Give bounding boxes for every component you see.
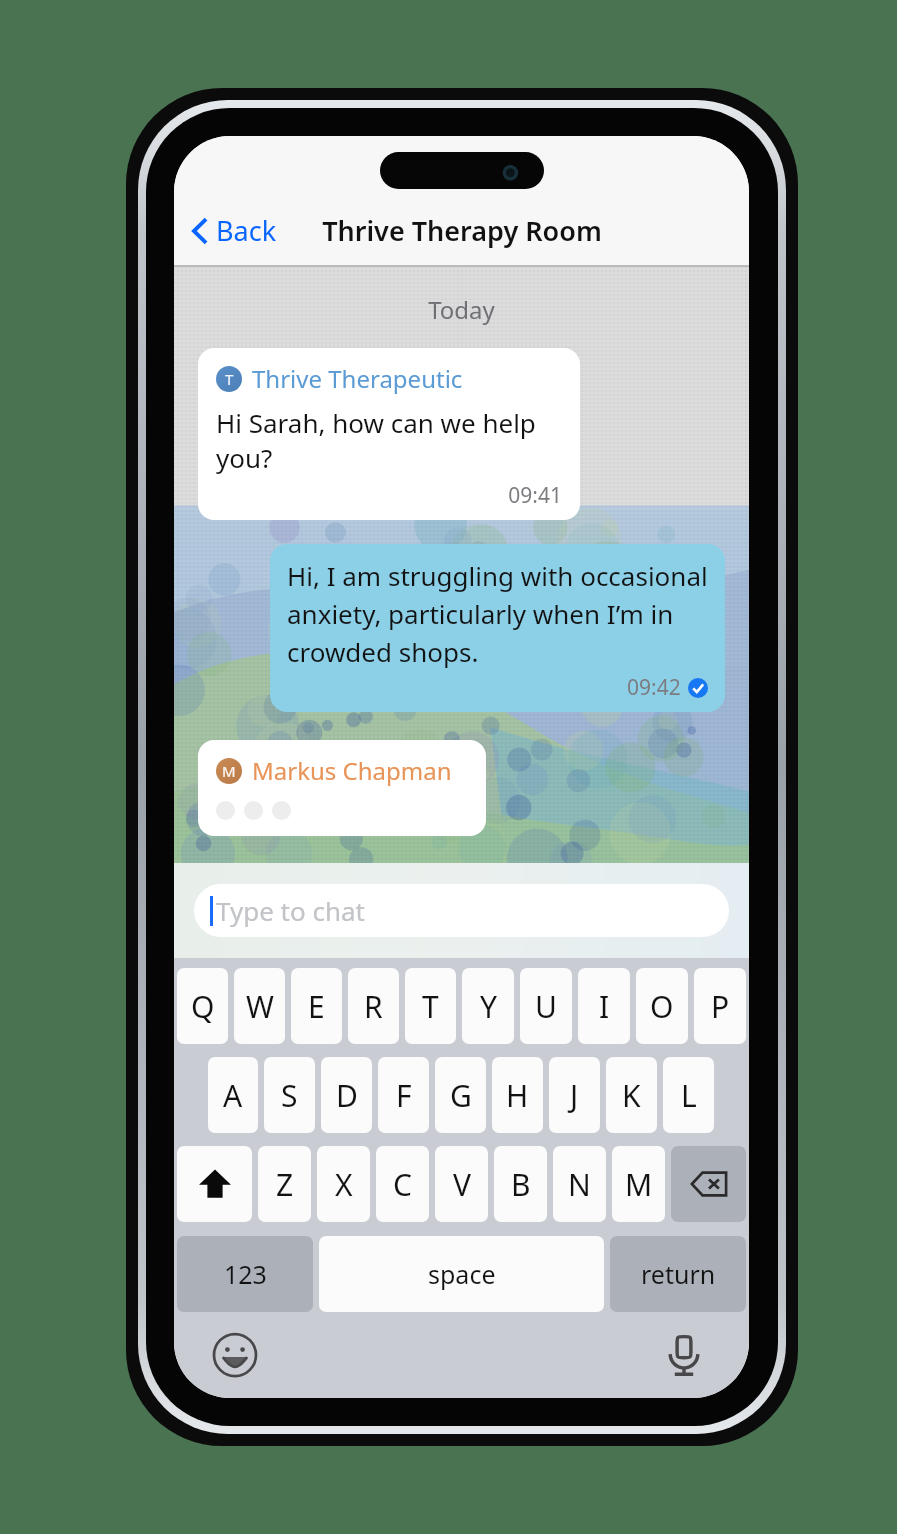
button[interactable]: Shift <box>177 1146 252 1222</box>
button[interactable]: H <box>492 1057 543 1133</box>
button[interactable]: F <box>378 1057 429 1133</box>
button[interactable]: Hi, I am struggling with occasional anxi… <box>270 544 725 712</box>
staticText: Hi, I am struggling with occasional anxi… <box>287 558 708 669</box>
staticText: return <box>641 1257 716 1291</box>
button[interactable]: V <box>435 1146 488 1222</box>
button[interactable]: T <box>405 968 456 1044</box>
staticText: X <box>335 1164 353 1205</box>
staticText: P <box>711 986 730 1027</box>
button[interactable]: Z <box>258 1146 311 1222</box>
button[interactable]: Y <box>462 968 514 1044</box>
button[interactable]: W <box>234 968 285 1044</box>
staticText: M <box>625 1164 653 1205</box>
button[interactable]: U <box>520 968 572 1044</box>
button[interactable]: S <box>264 1057 315 1133</box>
staticText: K <box>622 1075 641 1116</box>
staticText: R <box>364 986 383 1027</box>
button[interactable]: Emoji keyboard <box>210 1330 260 1380</box>
staticText: B <box>511 1164 531 1205</box>
staticText: Z <box>276 1164 294 1205</box>
staticText: Back <box>216 212 277 249</box>
staticText: Markus Chapman <box>252 754 452 787</box>
staticText: D <box>336 1075 358 1116</box>
staticText: Y <box>480 986 497 1027</box>
button[interactable]: Backspace <box>671 1146 746 1222</box>
button[interactable]: P <box>694 968 746 1044</box>
staticText: H <box>506 1075 529 1116</box>
button[interactable]: Back <box>186 206 283 255</box>
staticText: S <box>281 1075 298 1116</box>
button[interactable]: L <box>663 1057 714 1133</box>
staticText: V <box>453 1164 471 1205</box>
staticText: C <box>393 1164 412 1205</box>
button[interactable]: Q <box>177 968 228 1044</box>
button[interactable]: return <box>610 1236 746 1312</box>
button[interactable]: E <box>291 968 342 1044</box>
staticText: A <box>223 1075 243 1116</box>
button[interactable]: J <box>549 1057 600 1133</box>
button[interactable]: K <box>606 1057 657 1133</box>
button[interactable]: M <box>612 1146 665 1222</box>
button[interactable]: D <box>321 1057 372 1133</box>
button[interactable]: N <box>553 1146 606 1222</box>
button[interactable]: 123 <box>177 1236 313 1312</box>
staticText: O <box>650 986 674 1027</box>
staticText: M <box>222 761 236 781</box>
button[interactable]: space <box>319 1236 604 1312</box>
button[interactable]: X <box>317 1146 370 1222</box>
button[interactable]: A <box>208 1057 258 1133</box>
staticText: I <box>599 986 610 1027</box>
staticText: W <box>246 986 274 1027</box>
button[interactable]: C <box>376 1146 429 1222</box>
staticText: Today <box>174 293 749 326</box>
staticText: Type to chat <box>216 893 366 928</box>
staticText: L <box>681 1075 697 1116</box>
staticText: U <box>535 986 557 1027</box>
button[interactable]: O <box>636 968 688 1044</box>
button[interactable]: G <box>435 1057 486 1133</box>
staticText: Hi Sarah, how can we help you? <box>216 405 562 475</box>
button[interactable]: Type to chat <box>194 884 729 937</box>
button[interactable]: I <box>578 968 630 1044</box>
staticText: E <box>308 986 325 1027</box>
staticText: Thrive Therapeutic <box>252 362 463 395</box>
staticText: T <box>225 369 234 389</box>
staticText: J <box>570 1075 579 1116</box>
button[interactable]: M <box>198 740 486 836</box>
button[interactable]: B <box>494 1146 547 1222</box>
button[interactable]: Dictation <box>661 1332 707 1378</box>
button[interactable]: T <box>198 348 580 520</box>
staticText: F <box>396 1075 412 1116</box>
button[interactable]: R <box>348 968 399 1044</box>
staticText: G <box>450 1075 472 1116</box>
staticText: space <box>428 1257 496 1291</box>
staticText: 09:41 <box>216 481 562 510</box>
staticText: 09:42 <box>627 673 681 702</box>
staticText: N <box>568 1164 591 1205</box>
staticText: 123 <box>224 1257 267 1291</box>
staticText: Thrive Therapy Room <box>322 212 602 249</box>
staticText: T <box>422 986 439 1027</box>
staticText: Q <box>191 986 215 1027</box>
